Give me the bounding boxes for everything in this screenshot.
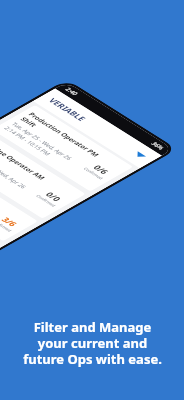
- staticText: Tue, Apr 25 - Wed, Apr 26: [9, 121, 74, 162]
- staticText: Confirmed: [34, 194, 57, 208]
- staticText: Filter and Manage your current and futur…: [23, 318, 162, 367]
- button[interactable]: Machine Operator AM Shift: [0, 132, 86, 219]
- button[interactable]: Production Operator PM Shift: [0, 104, 134, 192]
- staticText: Machine Operator AM Shift: [0, 138, 58, 193]
- staticText: 6:00 AM - 2:15 PM: [0, 152, 2, 183]
- button[interactable]: Warehouse Associate: [0, 159, 38, 242]
- staticText: Confirmed: [0, 219, 13, 233]
- staticText: VERIABLE: [46, 96, 89, 123]
- staticText: Production Operator PM Shift: [18, 110, 106, 165]
- staticText: 0/6: [90, 163, 112, 176]
- staticText: 36%: [149, 141, 166, 151]
- staticText: 0/0: [43, 190, 64, 203]
- staticText: Wed, Apr 26 - Wed, Apr 26: [0, 148, 28, 190]
- staticText: 2:40: [63, 86, 80, 97]
- staticText: 2:14 PM - 10:15 PM: [2, 125, 53, 157]
- staticText: Confirmed: [82, 167, 104, 181]
- staticText: 3/6: [0, 215, 20, 228]
